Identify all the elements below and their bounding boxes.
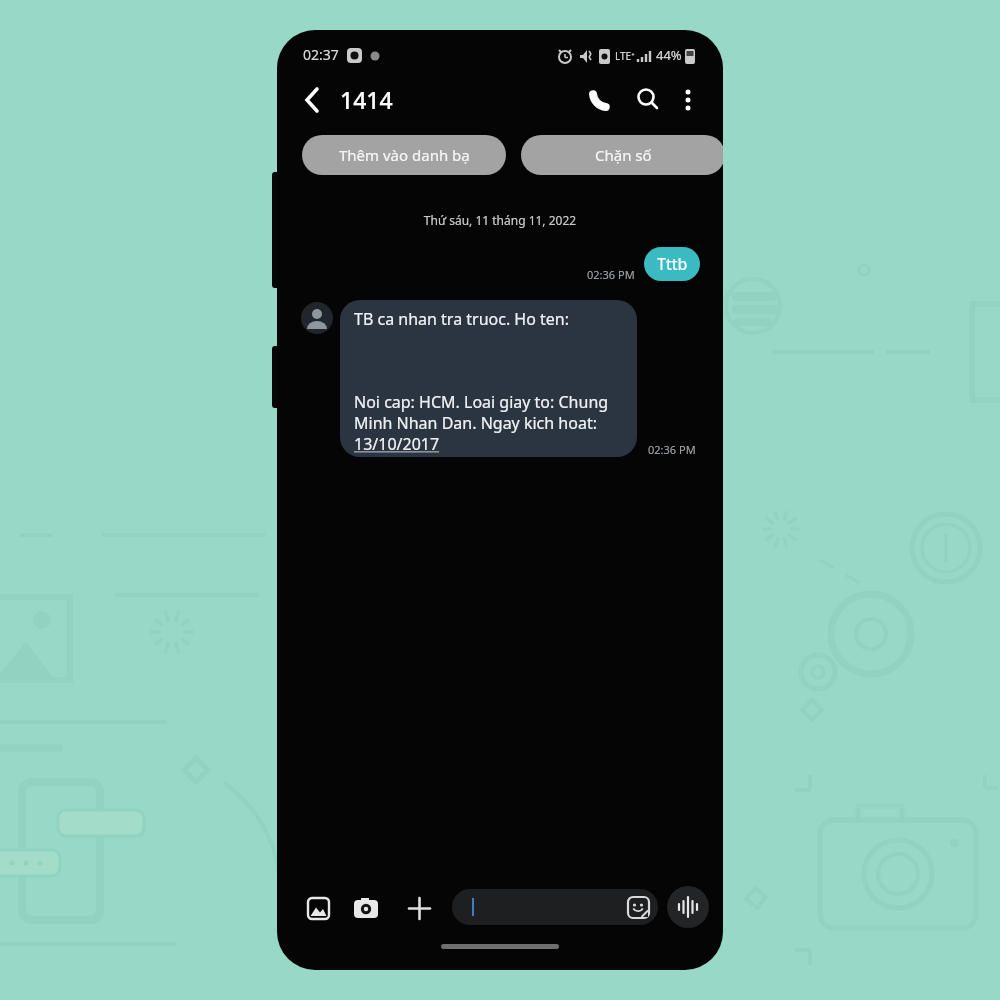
button[interactable]	[452, 889, 658, 925]
staticText: TB ca nhan tra truoc. Ho ten:	[354, 308, 570, 330]
staticText: 02:36 PM	[648, 442, 696, 457]
staticText: Chặn số	[595, 145, 652, 165]
button[interactable]: Tttb	[644, 247, 700, 281]
staticText: 02:36 PM	[587, 267, 635, 282]
button[interactable]	[667, 886, 709, 928]
staticText: Thứ sáu, 11 tháng 11, 2022	[277, 212, 723, 228]
button[interactable]	[591, 85, 621, 115]
staticText: 02:37	[303, 45, 339, 64]
button[interactable]	[400, 889, 438, 927]
staticText: Tttb	[657, 253, 688, 275]
button[interactable]: TB ca nhan tra truoc. Ho ten:	[340, 300, 637, 457]
button[interactable]: Chặn số	[521, 135, 723, 175]
button[interactable]	[347, 889, 385, 927]
staticText: LTE⁺	[615, 49, 635, 63]
button[interactable]	[633, 85, 663, 115]
staticText: 44%	[656, 46, 682, 64]
staticText: 1414	[340, 84, 393, 115]
button[interactable]	[675, 85, 701, 115]
button[interactable]	[297, 85, 327, 115]
staticText: Thêm vào danh bạ	[339, 145, 470, 165]
button[interactable]	[299, 889, 337, 927]
button[interactable]: Thêm vào danh bạ	[302, 135, 506, 175]
staticText: Noi cap: HCM. Loai giay to: Chung Minh N…	[354, 391, 627, 455]
